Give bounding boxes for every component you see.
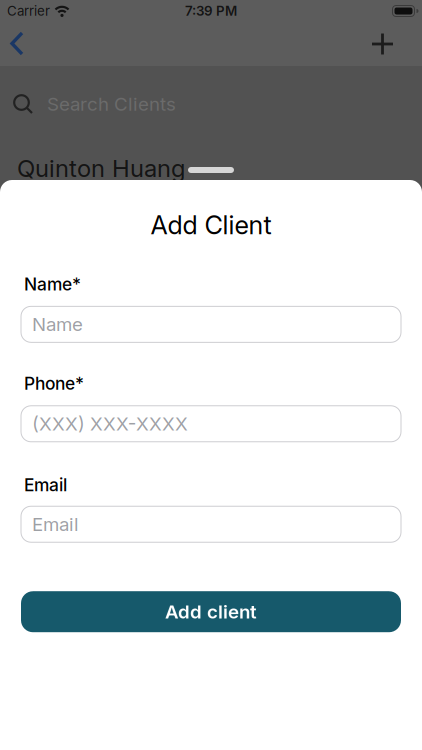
staticText: Name (32, 313, 83, 335)
button[interactable]: Quinton Huang (0, 154, 422, 182)
button[interactable]: Back (10, 32, 34, 56)
button[interactable]: Email (21, 506, 401, 542)
staticText: (XXX) XXX-XXXX (32, 413, 188, 435)
staticText: Quinton Huang (17, 154, 185, 182)
staticText: Email (24, 475, 67, 495)
button[interactable]: Search Clients (0, 93, 422, 115)
staticText: Add client (165, 601, 257, 623)
button[interactable]: Add client (21, 591, 401, 632)
staticText: Search Clients (47, 93, 176, 115)
staticText: Name* (24, 274, 81, 294)
button[interactable]: Name (21, 306, 401, 342)
button[interactable]: Add (372, 33, 394, 55)
staticText: Email (32, 513, 79, 535)
staticText: Carrier (7, 3, 50, 19)
staticText: Phone* (24, 373, 84, 394)
staticText: 7:39 PM (185, 3, 237, 19)
staticText: Add Client (150, 210, 271, 240)
button[interactable]: (XXX) XXX-XXXX (21, 406, 401, 442)
